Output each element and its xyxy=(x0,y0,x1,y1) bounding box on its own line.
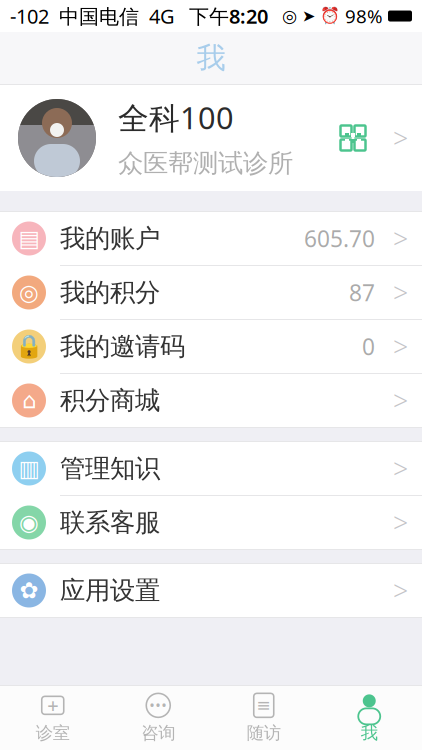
staticText: > xyxy=(393,329,408,364)
staticText: > xyxy=(393,383,408,418)
staticText: ➤ xyxy=(302,7,315,25)
button[interactable]: ⌂ xyxy=(0,374,422,427)
button[interactable]: ▤ xyxy=(0,212,422,265)
button[interactable]: ▥ xyxy=(0,442,422,495)
button[interactable]: 🔒 xyxy=(0,320,422,373)
staticText: 98% xyxy=(345,4,383,28)
staticText: > xyxy=(393,120,408,156)
staticText: 0 xyxy=(362,331,375,361)
staticText: ▥ xyxy=(18,456,39,481)
button[interactable]: 我 xyxy=(316,687,422,749)
staticText: ✿ xyxy=(19,578,38,603)
staticText: > xyxy=(393,275,408,310)
staticText: 众医帮测试诊所 xyxy=(118,148,293,179)
button[interactable]: ✿ xyxy=(0,564,422,617)
staticText: 随访 xyxy=(247,722,281,744)
staticText: 下午8:20 xyxy=(189,3,268,29)
staticText: + xyxy=(47,692,58,719)
staticText: ⌂ xyxy=(22,388,36,413)
staticText: -102 中国电信 4G xyxy=(10,3,175,29)
staticText: > xyxy=(393,505,408,540)
staticText: > xyxy=(393,451,408,486)
staticText: 全科100 xyxy=(118,97,234,138)
staticText: 积分商城 xyxy=(60,385,160,416)
button[interactable]: ••• xyxy=(105,687,211,749)
staticText: 应用设置 xyxy=(60,575,160,606)
staticText: 诊室 xyxy=(36,722,70,744)
staticText: 咨询 xyxy=(141,722,175,744)
staticText: ◎ xyxy=(19,280,39,305)
button[interactable]: ◉ xyxy=(0,496,422,549)
staticText: 我的账户 xyxy=(60,223,160,254)
staticText: 605.70 xyxy=(304,223,375,253)
staticText: ⏰ xyxy=(320,7,340,25)
staticText: ◎ xyxy=(282,6,297,26)
staticText: > xyxy=(393,573,408,608)
button[interactable]: ≡ xyxy=(211,687,316,749)
staticText: 我的邀请码 xyxy=(60,331,185,362)
button[interactable]: 全科100 xyxy=(0,85,422,191)
staticText: ••• xyxy=(149,696,167,715)
staticText: 联系客服 xyxy=(60,507,160,538)
staticText: 管理知识 xyxy=(60,453,160,484)
staticText: 🔒 xyxy=(15,334,43,359)
button[interactable]: ◎ xyxy=(0,266,422,319)
staticText: ▤ xyxy=(18,226,39,251)
staticText: 我的积分 xyxy=(60,277,160,308)
staticText: ◉ xyxy=(19,510,39,535)
button[interactable]: + xyxy=(0,687,105,749)
staticText: > xyxy=(393,221,408,256)
staticText: 我 xyxy=(196,40,225,76)
staticText: 我 xyxy=(361,722,378,744)
staticText: 87 xyxy=(349,277,375,307)
staticText: ≡ xyxy=(256,695,271,715)
